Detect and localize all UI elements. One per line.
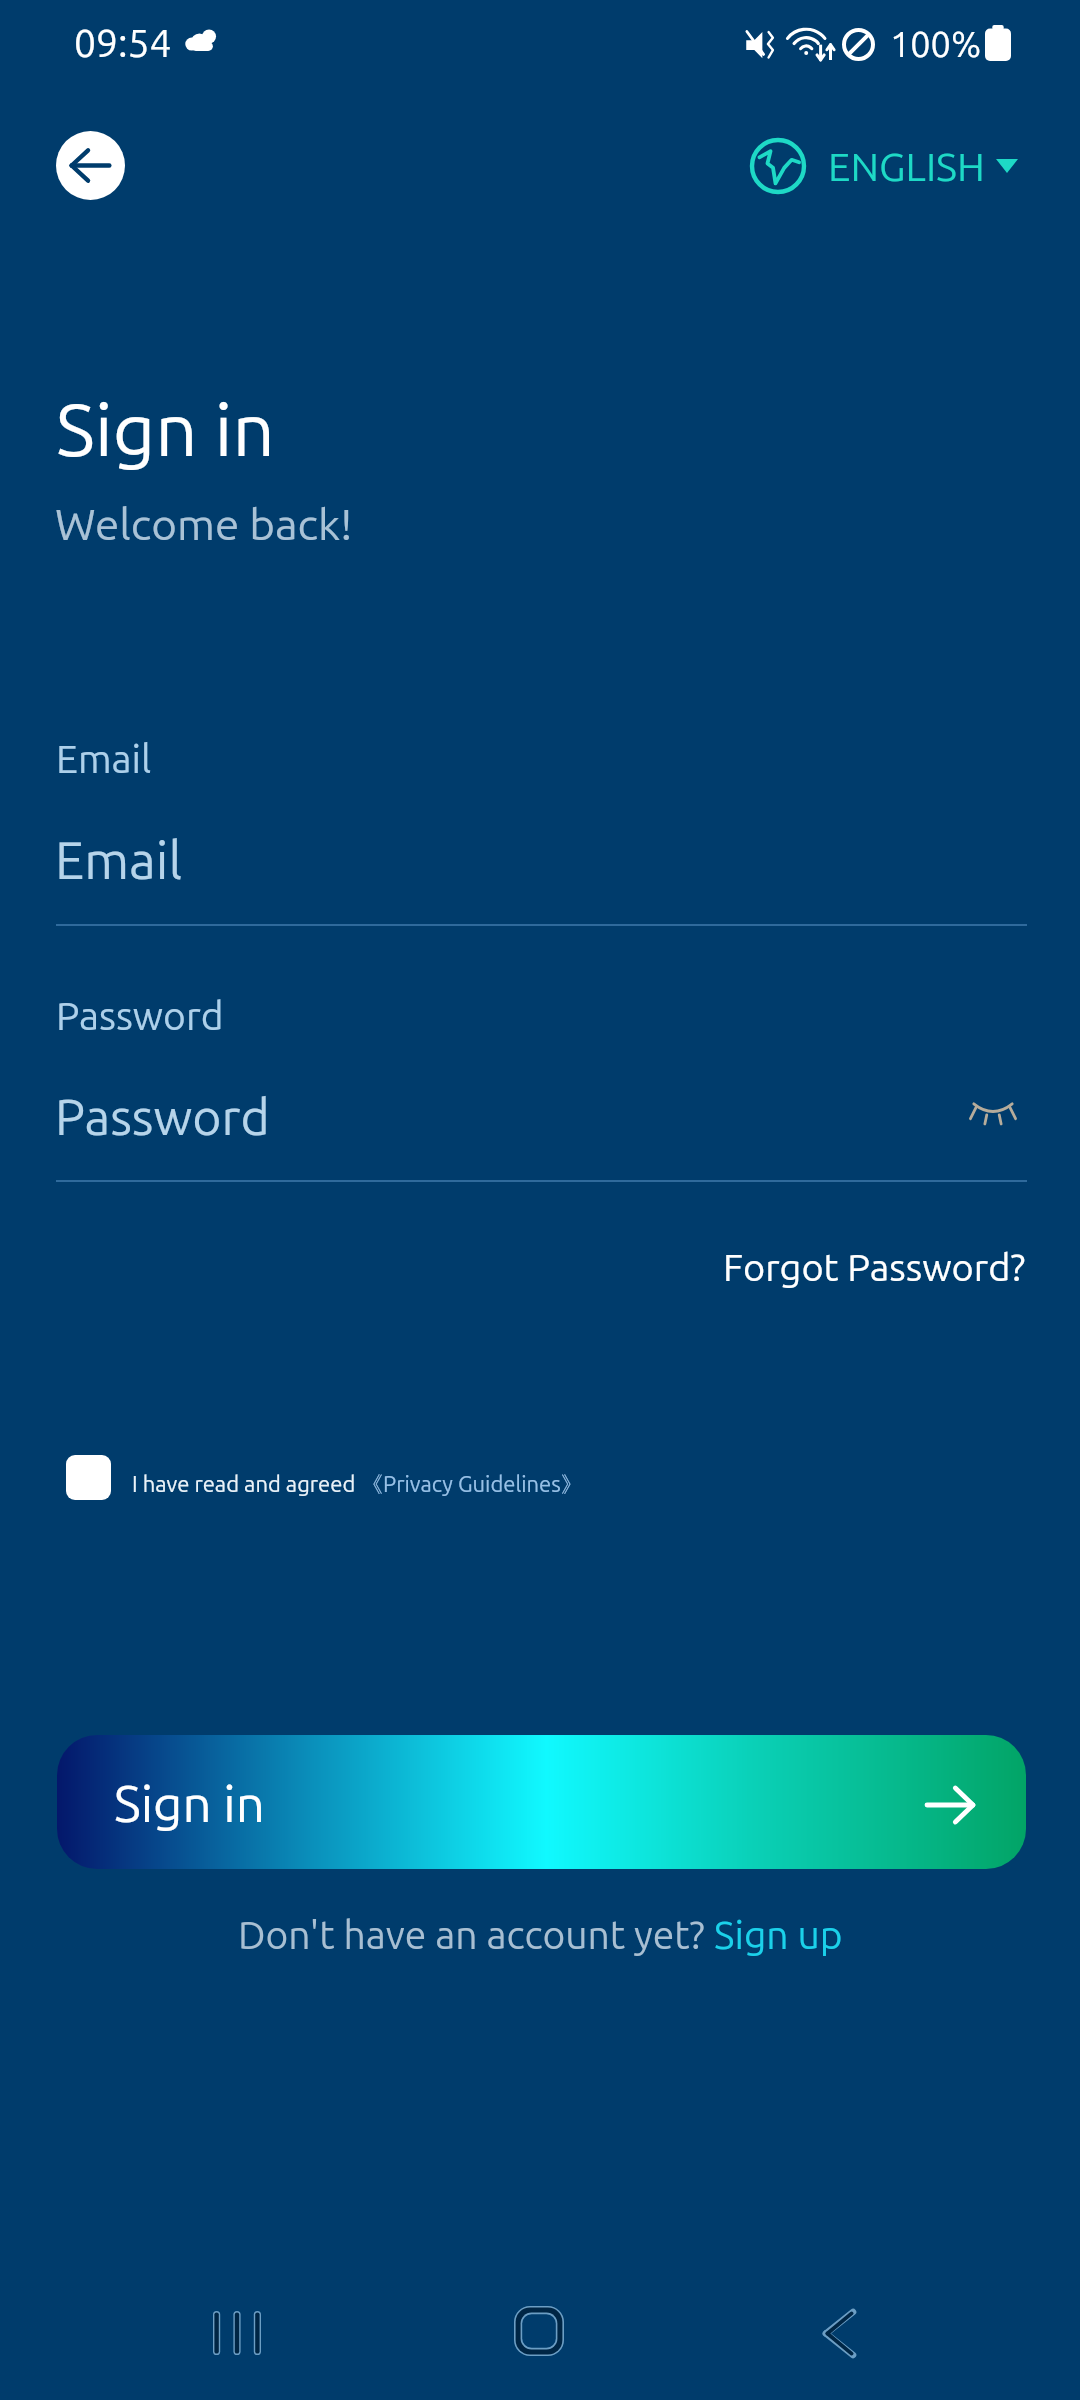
staticText: Sign in — [56, 387, 275, 470]
button[interactable]: Show password — [953, 1076, 1033, 1148]
staticText: Forgot Password? — [723, 1246, 1026, 1289]
button[interactable]: Home — [498, 2290, 580, 2372]
staticText: 100% — [890, 23, 982, 63]
staticText: Welcome back! — [55, 499, 353, 548]
staticText: Password — [55, 1088, 270, 1144]
button[interactable]: Back — [798, 2295, 880, 2371]
button[interactable]: ENGLISH — [747, 135, 1018, 197]
button[interactable]: Back — [56, 131, 125, 200]
staticText: I have read and agreed — [132, 1471, 361, 1496]
button[interactable]: Sign up — [714, 1913, 843, 1957]
staticText: Don't have an account yet? — [238, 1913, 714, 1957]
button[interactable]: Recents — [196, 2295, 278, 2371]
staticText: 《Privacy Guidelines》 — [361, 1471, 583, 1499]
button[interactable]: Sign in — [57, 1735, 1026, 1869]
staticText: Email — [55, 831, 183, 889]
staticText: ENGLISH — [828, 144, 985, 189]
button[interactable]: I have read and agreed — [56, 1445, 593, 1510]
staticText: Password — [56, 994, 224, 1038]
staticText: Sign up — [714, 1913, 843, 1957]
staticText: 09:54 — [74, 21, 172, 65]
staticText: Email — [56, 737, 152, 781]
button[interactable]: Forgot Password? — [709, 1234, 1040, 1301]
staticText: Sign in — [114, 1774, 265, 1831]
